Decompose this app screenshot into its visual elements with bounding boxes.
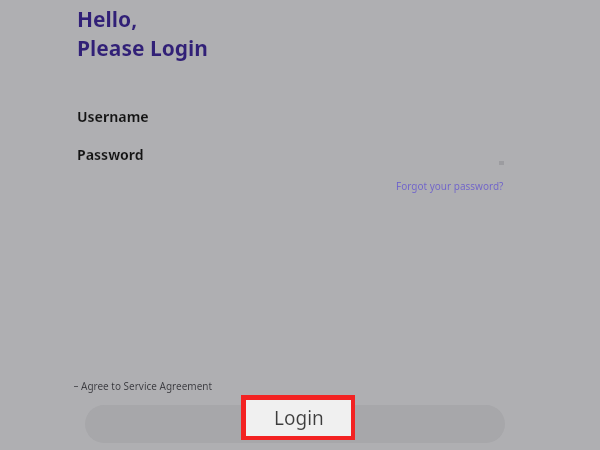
button[interactable]: Forgot your password?	[394, 177, 506, 195]
button[interactable]: Login button	[85, 405, 505, 443]
staticText: Password	[77, 145, 144, 164]
staticText: Hello,	[77, 5, 138, 34]
button[interactable]: Username	[77, 107, 507, 137]
staticText: Please Login	[77, 34, 209, 63]
staticText: Login	[274, 405, 324, 431]
staticText: Agree to Service Agreement	[81, 379, 213, 393]
button[interactable]: Agree to Service Agreement	[74, 377, 213, 395]
button[interactable]: Password	[77, 145, 507, 175]
button[interactable]: Login	[241, 395, 355, 440]
staticText: Forgot your password?	[396, 179, 504, 193]
staticText: Username	[77, 107, 149, 126]
